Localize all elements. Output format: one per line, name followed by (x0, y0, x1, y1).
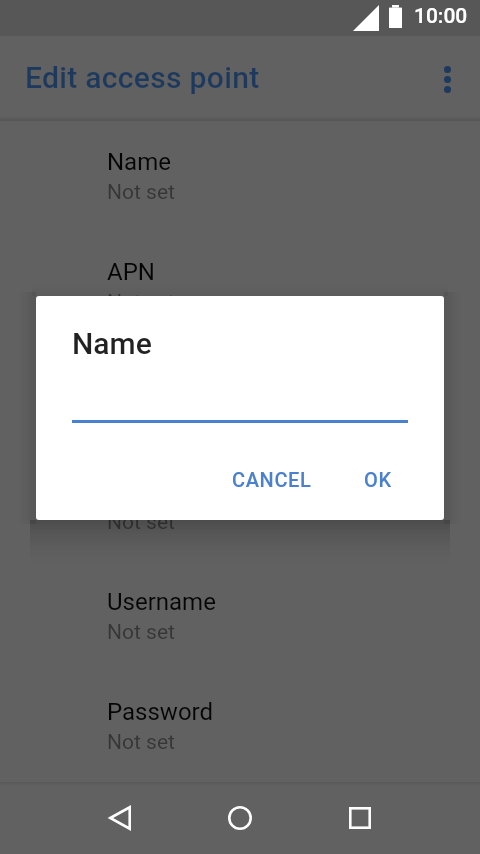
button[interactable]: Back (90, 788, 150, 848)
button[interactable]: Port (0, 471, 480, 581)
staticText: Not set (107, 730, 175, 755)
staticText: CANCEL (232, 468, 312, 491)
button[interactable]: Proxy (0, 361, 480, 471)
staticText: Name (72, 326, 152, 361)
staticText: 10:00 (414, 4, 468, 29)
button[interactable]: CANCEL (216, 458, 328, 501)
staticText: Username (107, 588, 216, 616)
staticText: Not set (107, 510, 175, 535)
button[interactable]: More options (419, 51, 475, 107)
button[interactable]: OK (348, 458, 408, 501)
button[interactable]: APN (0, 251, 480, 361)
button[interactable]: Home (210, 788, 270, 848)
button[interactable]: Password (0, 691, 480, 782)
button[interactable]: Recents (330, 788, 390, 848)
staticText: Edit access point (25, 60, 260, 95)
staticText: Not set (107, 180, 175, 205)
staticText: Not set (107, 290, 175, 315)
staticText: APN (107, 258, 155, 286)
staticText: OK (364, 468, 392, 491)
staticText: Name (107, 148, 171, 176)
button[interactable]: Username (0, 581, 480, 691)
button[interactable]: Name (0, 141, 480, 251)
staticText: Password (107, 698, 214, 726)
staticText: Not set (107, 620, 175, 645)
staticText: Not set (107, 400, 175, 425)
